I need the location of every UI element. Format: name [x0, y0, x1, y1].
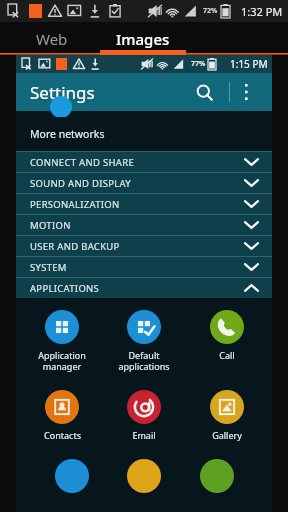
- button[interactable]: App: [127, 459, 161, 493]
- button[interactable]: SYSTEM: [16, 257, 272, 277]
- button[interactable]: Application manager: [25, 310, 99, 372]
- staticText: SOUND AND DISPLAY: [30, 177, 131, 190]
- button[interactable]: Contacts: [25, 390, 99, 441]
- staticText: SYSTEM: [30, 261, 67, 274]
- staticText: Application manager: [38, 349, 86, 372]
- staticText: APPLICATIONS: [30, 282, 100, 295]
- button[interactable]: App: [55, 459, 89, 493]
- staticText: Settings: [30, 81, 95, 104]
- staticText: Email: [132, 429, 156, 441]
- staticText: 72%: [203, 6, 218, 16]
- staticText: 1:15 PM: [230, 57, 268, 71]
- staticText: More networks: [30, 127, 105, 141]
- staticText: Contacts: [44, 429, 81, 441]
- button[interactable]: CONNECT AND SHARE: [16, 152, 272, 172]
- staticText: Call: [219, 349, 235, 361]
- staticText: USER AND BACKUP: [30, 240, 120, 253]
- staticText: Default applications: [118, 349, 170, 372]
- button[interactable]: More networks: [16, 117, 272, 151]
- staticText: Gallery: [212, 429, 242, 441]
- button[interactable]: More options: [232, 77, 262, 107]
- button[interactable]: Call: [190, 310, 264, 361]
- button[interactable]: PERSONALIZATION: [16, 194, 272, 214]
- staticText: Web: [36, 29, 68, 49]
- button[interactable]: SOUND AND DISPLAY: [16, 173, 272, 193]
- staticText: MOTION: [30, 219, 71, 232]
- staticText: 1:32 PM: [241, 4, 283, 19]
- button[interactable]: Search: [188, 76, 220, 108]
- staticText: Images: [116, 29, 170, 49]
- button[interactable]: App: [200, 459, 234, 493]
- button[interactable]: APPLICATIONS: [16, 278, 272, 298]
- button[interactable]: Web: [6, 22, 98, 55]
- staticText: 77%: [191, 59, 206, 69]
- button[interactable]: USER AND BACKUP: [16, 236, 272, 256]
- button[interactable]: Gallery: [190, 390, 264, 441]
- button[interactable]: Default applications: [107, 310, 181, 372]
- button[interactable]: MOTION: [16, 215, 272, 235]
- staticText: CONNECT AND SHARE: [30, 156, 135, 169]
- button[interactable]: Images: [100, 22, 186, 55]
- button[interactable]: Email: [107, 390, 181, 441]
- staticText: PERSONALIZATION: [30, 198, 120, 211]
